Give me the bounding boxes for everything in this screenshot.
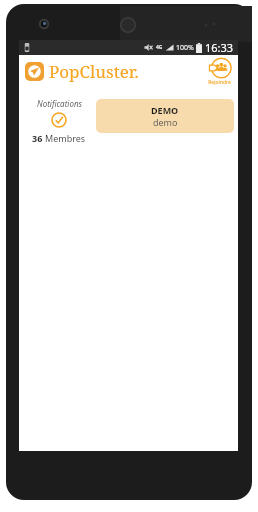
staticText: DEMO [151, 104, 179, 116]
staticText: Notifications [37, 98, 82, 109]
staticText: demo [153, 116, 178, 128]
staticText: 36 [32, 132, 45, 144]
button[interactable]: DEMO [96, 99, 234, 133]
button[interactable] [25, 62, 44, 81]
staticText: 16:33 [205, 40, 234, 55]
staticText: 100% [176, 43, 194, 53]
staticText: Membres [45, 132, 86, 144]
staticText: 4G [156, 44, 163, 51]
button[interactable]: Rejoindre [207, 57, 232, 86]
staticText: Rejoindre [208, 79, 231, 86]
button[interactable]: Notifications activées [51, 112, 67, 128]
staticText: PopCluster. [49, 60, 139, 83]
